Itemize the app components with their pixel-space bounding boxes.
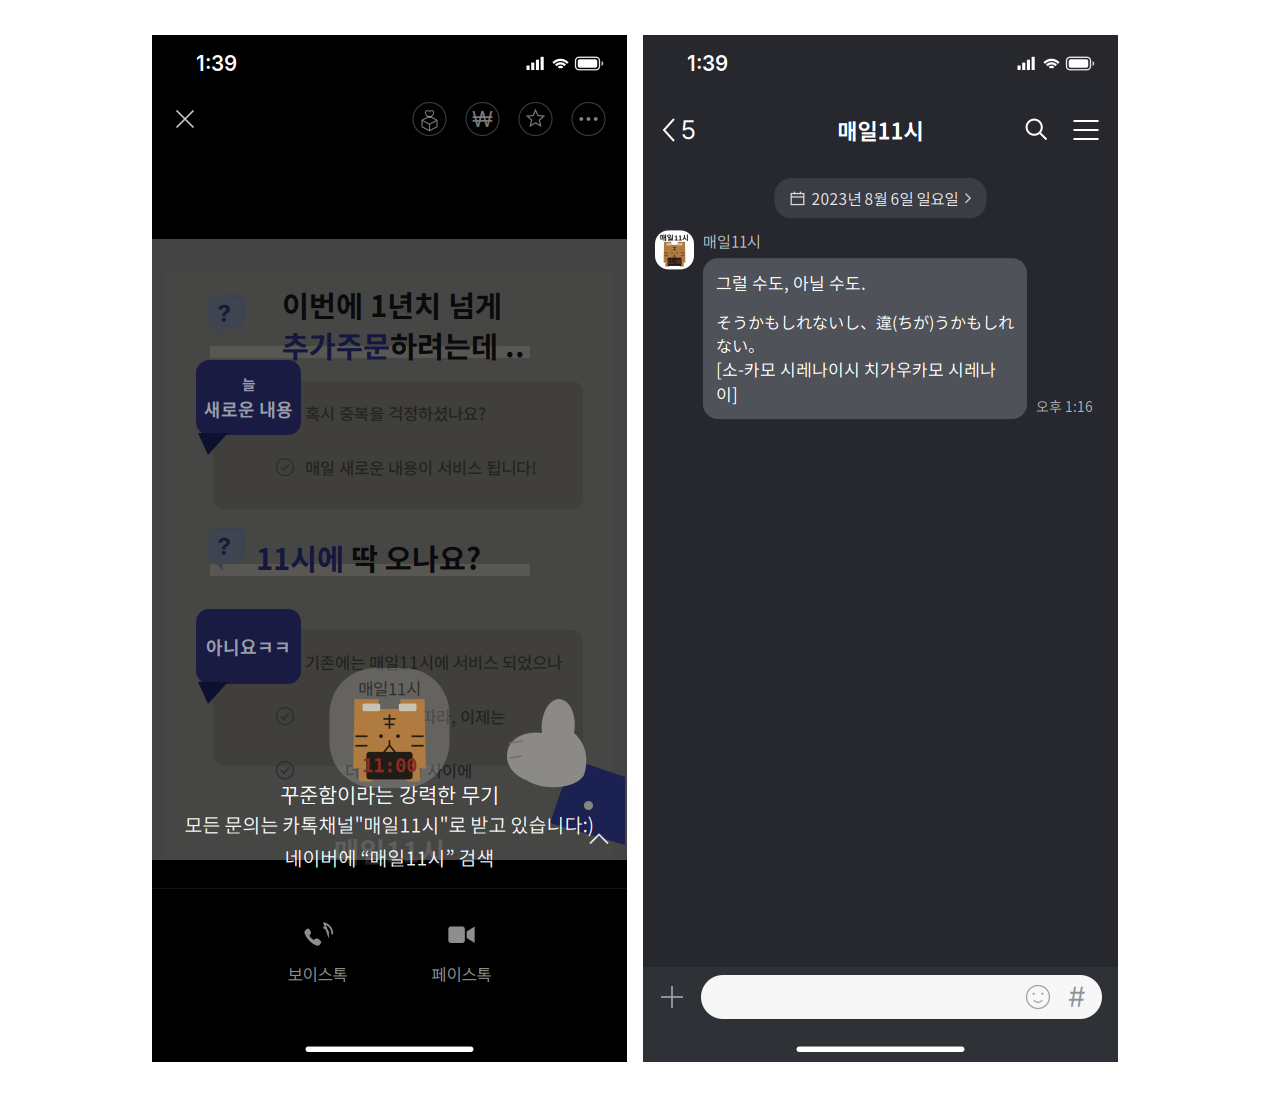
staticText: 네이버에 “매일11시” 검색 <box>284 843 494 871</box>
staticText: 매일11시 <box>837 114 923 146</box>
staticText: 모든 문의는 카톡채널"매일11시"로 받고 있습니다:) <box>184 810 594 838</box>
staticText: 아니요ㅋㅋ <box>206 633 291 660</box>
button[interactable]: 보이스톡 <box>281 910 353 998</box>
staticText: ₩ <box>472 106 493 132</box>
staticText: 매일11시 <box>358 676 421 700</box>
button[interactable]: 5 <box>643 101 710 159</box>
button[interactable]: Gift <box>403 96 456 142</box>
button[interactable]: Search <box>1014 101 1060 159</box>
staticText: 1:39 <box>196 51 237 76</box>
staticText: 페이스톡 <box>431 962 491 986</box>
staticText: 11시에 <box>256 536 344 578</box>
button[interactable]: 매일11시 profile <box>655 230 694 269</box>
staticText: そうかもしれないし、違(ちが)うかもしれ <box>716 310 1014 333</box>
button[interactable]: Add <box>643 972 701 1022</box>
staticText: 늘 <box>242 373 255 394</box>
staticText: 하려는데 .. <box>390 323 525 366</box>
staticText: 11:00 <box>362 755 417 777</box>
staticText: 오후 1:16 <box>1036 396 1093 416</box>
staticText: 더 오후 4시 사이에 <box>305 758 472 782</box>
button[interactable]: 페이스톡 <box>425 910 497 998</box>
button[interactable]: Emoji <box>1018 974 1058 1020</box>
staticText: ない。 <box>716 333 764 357</box>
staticText: 매일 새로운 내용이 서비스 됩니다! <box>305 455 537 479</box>
staticText: 늘어남에 따라, 이제는 <box>305 704 505 728</box>
button[interactable]: Collapse <box>577 819 621 859</box>
button[interactable]: Menu <box>1060 101 1112 159</box>
staticText: # <box>1068 981 1085 1013</box>
staticText: 새로운 내용 <box>204 396 293 422</box>
staticText: 매일11시 <box>703 230 761 252</box>
staticText: ? <box>217 531 230 560</box>
staticText: 혹시 중복을 걱정하셨나요? <box>305 401 486 425</box>
staticText: 5 <box>681 115 696 145</box>
button[interactable]: 2023년 8월 6일 일요일 <box>774 178 986 218</box>
button[interactable]: Close <box>157 95 213 143</box>
staticText: 매일11시 <box>333 830 445 870</box>
staticText: ? <box>217 298 230 327</box>
staticText: 보이스톡 <box>287 962 347 986</box>
staticText: 그럴 수도, 아닐 수도. <box>716 270 866 295</box>
staticText: 딱 오나요? <box>344 536 481 578</box>
staticText: 추가주문 <box>282 323 390 366</box>
staticText: 11:00 <box>667 258 682 265</box>
staticText: 1:39 <box>687 51 728 76</box>
staticText: 기존에는 매일11시에 서비스 되었으나 <box>305 650 562 674</box>
button[interactable]: Gift money <box>456 96 509 142</box>
staticText: 이번에 1년치 넘게 <box>282 283 502 325</box>
button[interactable]: More <box>562 96 615 142</box>
button[interactable]: Favorite <box>509 96 562 142</box>
staticText: 이] <box>716 381 738 406</box>
staticText: [소-카모 시레나이시 치가우카모 시레나 <box>716 357 996 381</box>
staticText: 2023년 8월 6일 일요일 <box>811 187 958 209</box>
staticText: 꾸준함이라는 강력한 무기 <box>280 779 499 809</box>
button[interactable]: Hashtag <box>1058 974 1096 1020</box>
staticText: 매일11시 <box>660 232 689 242</box>
